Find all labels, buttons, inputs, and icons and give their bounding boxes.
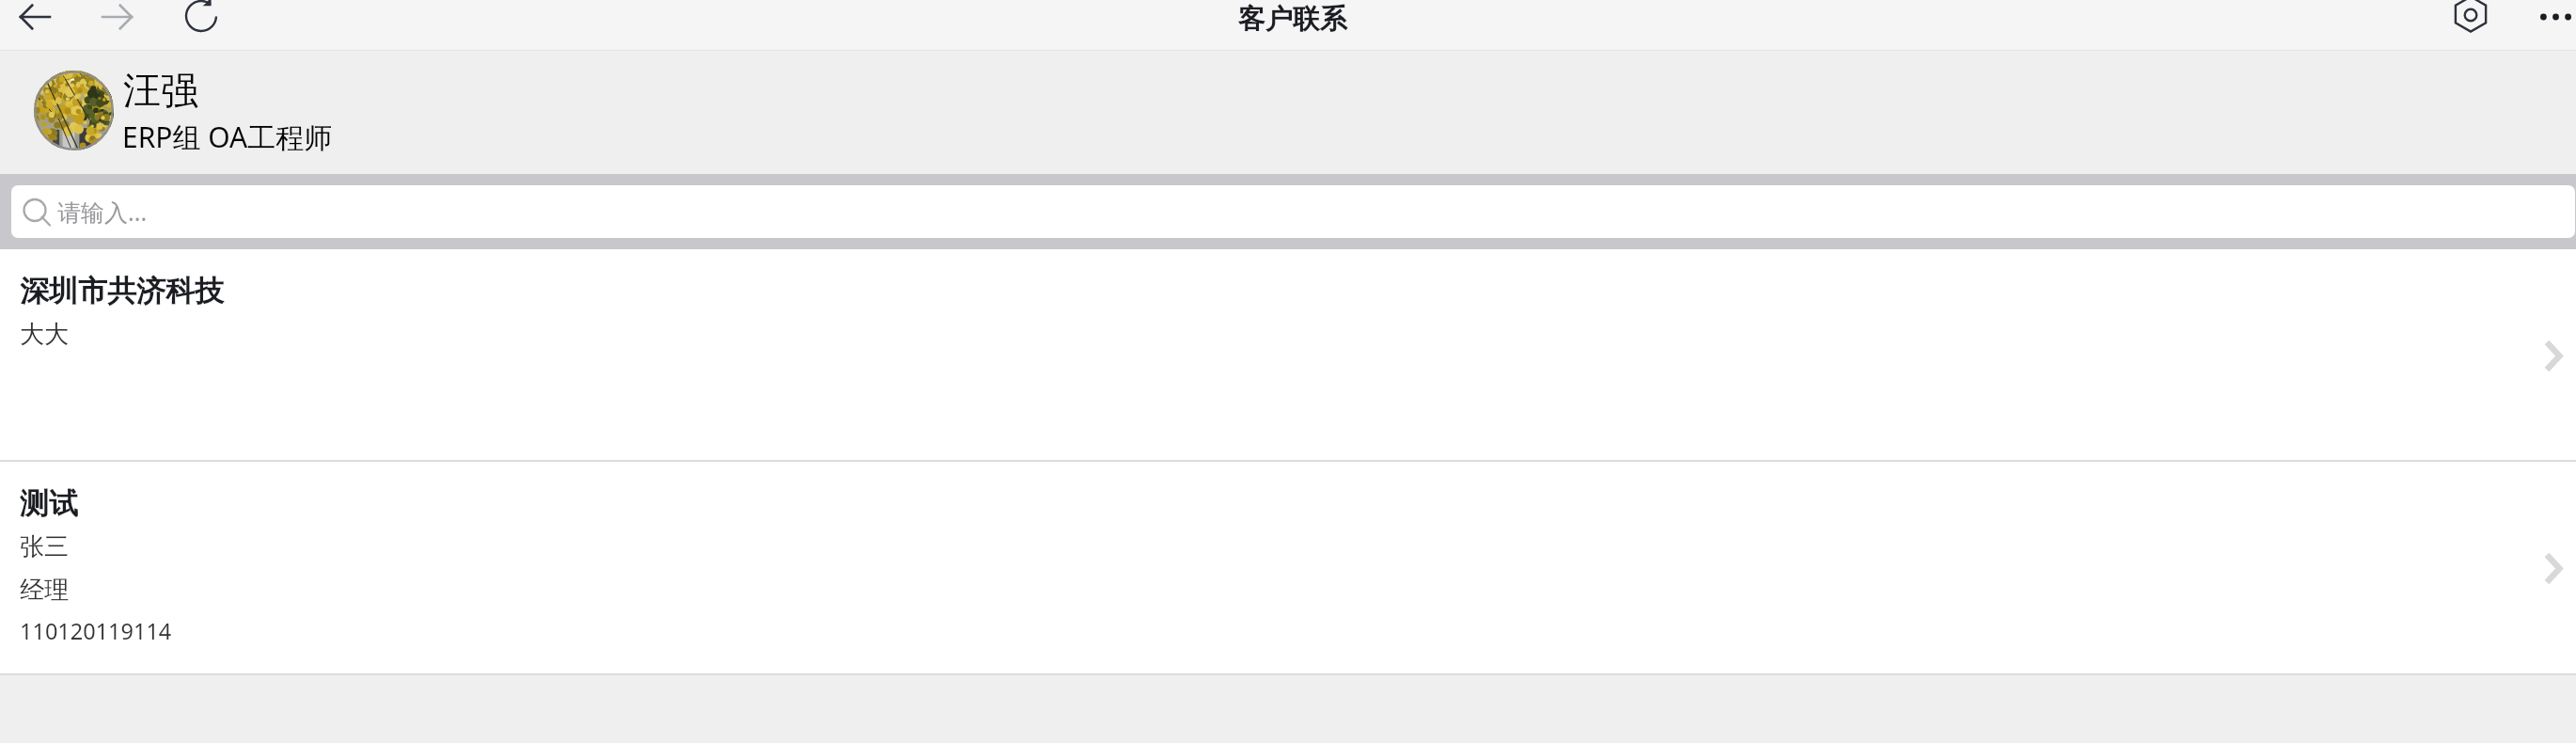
- staticText: 请输入...: [57, 196, 148, 228]
- staticText: 测试: [20, 485, 78, 522]
- staticText: ERP组 OA工程师: [122, 118, 333, 156]
- button[interactable]: Forward: [96, 0, 137, 33]
- button[interactable]: Refresh: [181, 0, 222, 32]
- staticText: 深圳市共济科技: [20, 273, 224, 309]
- button[interactable]: Settings: [2448, 0, 2493, 34]
- button[interactable]: 请输入...: [11, 185, 2575, 238]
- button[interactable]: Back: [14, 0, 55, 33]
- staticText: 客户联系: [1238, 2, 1347, 37]
- staticText: 110120119114: [20, 616, 172, 646]
- staticText: 大大: [20, 319, 69, 350]
- button[interactable]: 深圳市共济科技: [0, 249, 2576, 462]
- button[interactable]: More options: [2533, 0, 2576, 33]
- button[interactable]: 汪强: [0, 51, 2576, 174]
- staticText: 张三: [20, 531, 69, 562]
- staticText: 经理: [20, 575, 69, 606]
- staticText: 汪强: [123, 67, 198, 114]
- button[interactable]: 测试: [0, 462, 2576, 675]
